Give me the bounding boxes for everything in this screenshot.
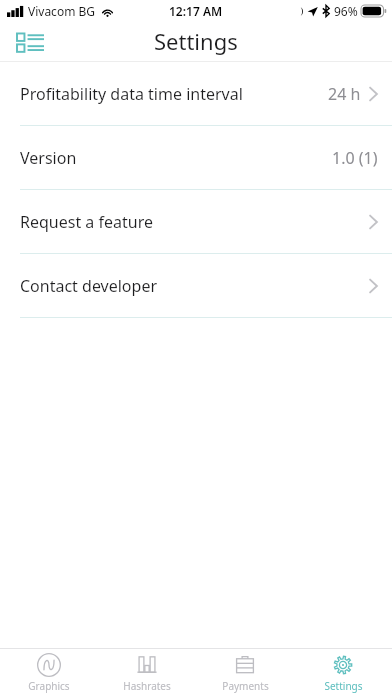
staticText: Graphics xyxy=(28,679,70,693)
button[interactable]: Contact developer xyxy=(0,254,392,317)
staticText: Settings xyxy=(154,26,238,56)
staticText: Version xyxy=(20,147,77,169)
staticText: 1.0 (1) xyxy=(332,147,378,169)
staticText: 12:17 AM xyxy=(169,3,223,19)
staticText: Settings xyxy=(324,679,363,693)
staticText: Payments xyxy=(222,679,269,693)
staticText: Vivacom BG xyxy=(28,3,96,19)
button[interactable]: Settings xyxy=(294,649,392,696)
staticText: Contact developer xyxy=(20,275,158,297)
button[interactable]: Request a feature xyxy=(0,190,392,253)
staticText: 24 h xyxy=(328,83,361,105)
staticText: Hashrates xyxy=(123,679,171,693)
button[interactable]: Payments xyxy=(196,649,294,696)
button[interactable]: Profitability data time interval xyxy=(0,62,392,125)
button[interactable]: Version xyxy=(0,126,392,189)
button[interactable]: Graphics xyxy=(0,649,98,696)
button[interactable]: List xyxy=(12,24,48,60)
button[interactable]: Hashrates xyxy=(98,649,196,696)
staticText: Request a feature xyxy=(20,211,153,233)
staticText: Profitability data time interval xyxy=(20,83,243,105)
staticText: 96% xyxy=(334,3,358,19)
